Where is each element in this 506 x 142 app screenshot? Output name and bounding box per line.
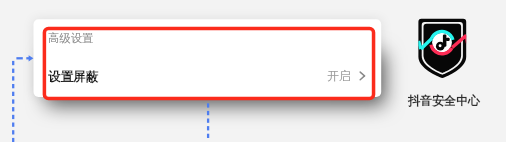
staticText: 抖音安全中心 bbox=[408, 93, 480, 108]
staticText: 开启 bbox=[327, 68, 351, 83]
staticText: 高级设置 bbox=[48, 31, 94, 45]
staticText: 设置屏蔽 bbox=[48, 69, 98, 85]
button[interactable]: 设置屏蔽 bbox=[44, 60, 374, 98]
